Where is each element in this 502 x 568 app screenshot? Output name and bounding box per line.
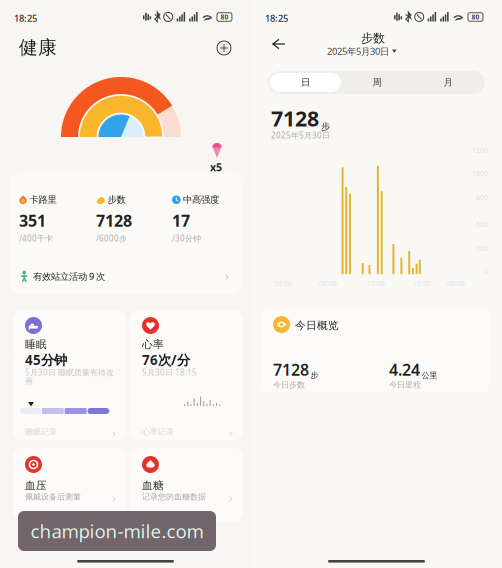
- staticText: 7128: [273, 359, 309, 380]
- staticText: 周: [372, 77, 381, 88]
- button[interactable]: 添加: [214, 38, 234, 58]
- staticText: 步数: [361, 31, 385, 46]
- staticText: 600: [476, 220, 488, 229]
- staticText: /6000步: [96, 233, 127, 244]
- button[interactable]: 2025年5月30日: [327, 45, 397, 57]
- staticText: ›: [112, 490, 116, 506]
- staticText: 00:00: [447, 279, 465, 288]
- staticText: 80: [220, 13, 228, 21]
- staticText: 4.24: [389, 359, 420, 380]
- staticText: 2025年5月30日: [271, 130, 330, 141]
- staticText: x5: [210, 160, 222, 174]
- staticText: 血压: [25, 479, 47, 492]
- staticText: 卡路里: [29, 194, 56, 205]
- staticText: champion-mile.com: [30, 519, 203, 543]
- staticText: 2025年5月30日: [327, 45, 389, 57]
- staticText: 0: [484, 267, 488, 276]
- staticText: 18:25: [265, 12, 288, 24]
- staticText: 日: [301, 77, 310, 88]
- staticText: 记录您的血糖数据: [142, 492, 206, 502]
- staticText: 00:00: [274, 279, 292, 288]
- staticText: 心率: [142, 338, 164, 351]
- staticText: 12:00: [367, 279, 385, 288]
- staticText: 300: [476, 244, 488, 253]
- staticText: 18:25: [14, 12, 37, 24]
- button[interactable]: 血压: [13, 448, 126, 522]
- staticText: 步: [321, 121, 330, 132]
- staticText: 1000: [472, 169, 488, 178]
- staticText: 45分钟: [25, 351, 67, 369]
- staticText: 17: [172, 210, 190, 231]
- staticText: 今日里程: [389, 380, 421, 390]
- staticText: 步数: [107, 194, 125, 205]
- staticText: 善: [25, 376, 33, 386]
- staticText: 800: [476, 193, 488, 202]
- staticText: 76次/分: [142, 351, 190, 369]
- staticText: 心率记录: [142, 427, 174, 437]
- staticText: /400千卡: [19, 233, 53, 244]
- staticText: 公里: [421, 370, 437, 380]
- staticText: 睡眠: [25, 338, 47, 351]
- staticText: 月: [443, 77, 452, 88]
- staticText: 今日概览: [295, 319, 339, 332]
- staticText: 7128: [271, 104, 319, 132]
- staticText: 7128: [96, 210, 132, 231]
- button[interactable]: 返回: [267, 33, 291, 55]
- button[interactable]: 周: [341, 73, 413, 92]
- button[interactable]: 血糖: [130, 448, 243, 522]
- staticText: 睡眠记录: [25, 427, 57, 437]
- staticText: 351: [19, 210, 46, 231]
- button[interactable]: 月: [413, 73, 483, 92]
- staticText: 5月30日 睡眠质量有待改: [25, 367, 114, 378]
- staticText: 5月30日 18:15: [142, 367, 197, 378]
- staticText: /30分钟: [172, 233, 201, 244]
- staticText: ›: [225, 268, 229, 284]
- button[interactable]: 睡眠: [13, 310, 126, 440]
- staticText: 80: [471, 13, 479, 21]
- staticText: 有效站立活动 9 次: [33, 270, 105, 282]
- staticText: ›: [229, 490, 233, 506]
- staticText: ›: [112, 425, 116, 441]
- staticText: 06:00: [319, 279, 337, 288]
- staticText: 18:00: [413, 279, 431, 288]
- button[interactable]: 心率: [130, 310, 243, 440]
- staticText: 今日步数: [273, 380, 305, 390]
- staticText: 步: [310, 370, 318, 380]
- button[interactable]: 日: [270, 73, 341, 92]
- staticText: 血糖: [142, 479, 164, 492]
- staticText: 1200: [472, 146, 488, 155]
- staticText: 佩戴设备后测量: [25, 492, 81, 502]
- button[interactable]: 有效站立活动 9 次: [9, 259, 242, 294]
- staticText: ›: [229, 425, 233, 441]
- staticText: 中高强度: [183, 194, 219, 205]
- staticText: 健康: [19, 36, 57, 59]
